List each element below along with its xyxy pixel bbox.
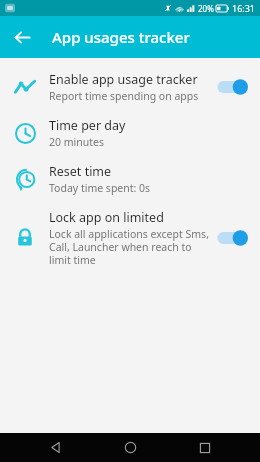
button[interactable]: Recent apps xyxy=(185,433,225,462)
staticText: App usages tracker xyxy=(52,27,190,47)
button[interactable]: Enable app usage tracker xyxy=(0,64,260,110)
staticText: Enable app usage tracker xyxy=(49,71,198,88)
button[interactable]: Time per day xyxy=(0,110,260,156)
staticText: Report time spending on apps xyxy=(49,89,199,103)
button[interactable]: Reset time xyxy=(0,156,260,202)
staticText: Reset time xyxy=(49,163,112,180)
staticText: 16:31 xyxy=(232,2,256,14)
staticText: Lock all applications except Sms, Call, … xyxy=(49,227,210,267)
button[interactable]: Back xyxy=(6,21,38,53)
staticText: Time per day xyxy=(49,117,126,134)
staticText: Today time spent: 0s xyxy=(49,181,151,195)
button[interactable]: Lock app on limited xyxy=(0,202,260,274)
staticText: Lock app on limited xyxy=(49,209,164,226)
button[interactable]: Back xyxy=(35,433,75,462)
staticText: 20% xyxy=(198,3,214,14)
button[interactable]: Home xyxy=(110,433,150,462)
staticText: 20 minutes xyxy=(49,135,104,149)
button[interactable]: Toggle xyxy=(216,75,250,99)
button[interactable]: Toggle xyxy=(216,226,250,250)
